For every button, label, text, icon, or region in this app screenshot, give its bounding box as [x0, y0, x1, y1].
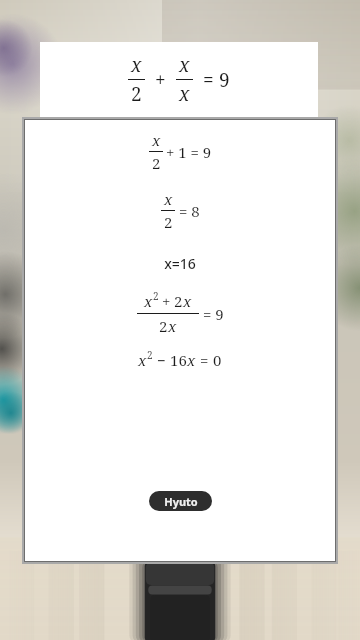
staticText: − [157, 350, 166, 370]
staticText: x [131, 52, 142, 78]
staticText: x [187, 350, 196, 370]
staticText: x [183, 291, 192, 311]
staticText: + [162, 291, 171, 311]
staticText: 16 [170, 350, 187, 370]
staticText: x [138, 350, 147, 370]
staticText: Hyuto [164, 494, 198, 509]
staticText: 9 [219, 67, 230, 93]
button[interactable]: x [40, 42, 318, 117]
button[interactable]: x [25, 120, 335, 561]
staticText: x [179, 52, 190, 78]
staticText: x=16 [164, 254, 196, 273]
staticText: = 8 [179, 201, 200, 221]
staticText: 2 [152, 153, 161, 173]
staticText: x [168, 316, 177, 336]
staticText: x [144, 291, 153, 311]
staticText: + [155, 67, 166, 93]
staticText: + 1 = 9 [166, 142, 212, 162]
staticText: = 9 [203, 304, 224, 324]
staticText: x [152, 130, 161, 150]
staticText: x [179, 81, 190, 107]
staticText: 2 [174, 291, 183, 311]
staticText: 2 [164, 212, 173, 232]
staticText: 0 [213, 350, 222, 370]
staticText: = [200, 350, 209, 370]
staticText: 2 [131, 81, 142, 107]
button[interactable]: Hide [149, 491, 212, 511]
staticText: x [164, 189, 173, 209]
staticText: 2 [153, 289, 159, 303]
staticText: 2 [159, 316, 168, 336]
staticText: = [203, 67, 214, 93]
staticText: 2 [147, 348, 153, 362]
